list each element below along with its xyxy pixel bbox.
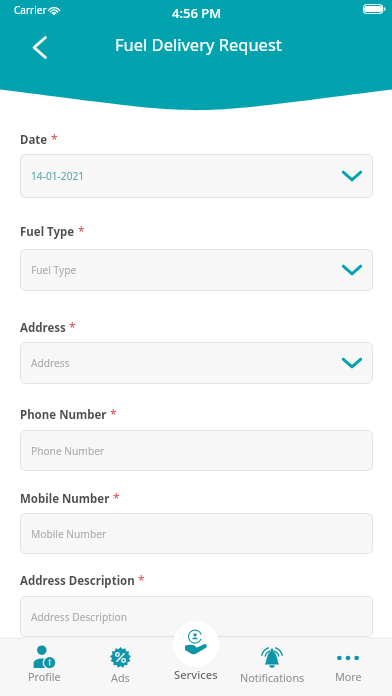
staticText: * bbox=[113, 490, 120, 506]
button[interactable]: Phone Number bbox=[20, 430, 373, 471]
staticText: 14-01-2021 bbox=[31, 169, 85, 183]
staticText: Carrier bbox=[14, 3, 47, 17]
button[interactable]: Notifications bbox=[234, 638, 310, 696]
staticText: 4:56 PM bbox=[172, 4, 222, 22]
staticText: Ads bbox=[111, 670, 130, 685]
button[interactable]: Ads bbox=[82, 638, 158, 696]
staticText: Mobile Number bbox=[20, 491, 110, 507]
staticText: Address Description bbox=[31, 610, 128, 624]
staticText: Fuel Type bbox=[31, 263, 77, 277]
staticText: * bbox=[69, 319, 76, 335]
button[interactable]: More bbox=[310, 638, 386, 696]
staticText: * bbox=[51, 131, 58, 147]
staticText: Services bbox=[174, 667, 218, 682]
staticText: * bbox=[110, 406, 117, 422]
staticText: Notifications bbox=[240, 670, 305, 685]
staticText: Address bbox=[20, 320, 66, 336]
staticText: Address bbox=[31, 356, 70, 370]
button[interactable]: Back bbox=[23, 31, 55, 63]
staticText: Mobile Number bbox=[31, 527, 107, 541]
staticText: Phone Number bbox=[20, 407, 107, 423]
button[interactable]: Address Description bbox=[20, 596, 373, 637]
staticText: * bbox=[138, 572, 145, 588]
button[interactable]: Address bbox=[20, 342, 373, 384]
staticText: Phone Number bbox=[31, 444, 105, 458]
staticText: * bbox=[78, 223, 85, 239]
staticText: Fuel Delivery Request bbox=[115, 33, 282, 55]
button[interactable]: Profile bbox=[6, 638, 82, 696]
button[interactable]: 14-01-2021 bbox=[20, 154, 373, 198]
staticText: Date bbox=[20, 132, 48, 148]
button[interactable]: Fuel Type bbox=[20, 249, 373, 291]
button[interactable]: Mobile Number bbox=[20, 513, 373, 554]
staticText: Profile bbox=[28, 669, 61, 684]
staticText: More bbox=[335, 669, 362, 684]
staticText: Fuel Type bbox=[20, 224, 75, 240]
button[interactable]: Services bbox=[173, 621, 219, 667]
staticText: Address Description bbox=[20, 573, 135, 589]
